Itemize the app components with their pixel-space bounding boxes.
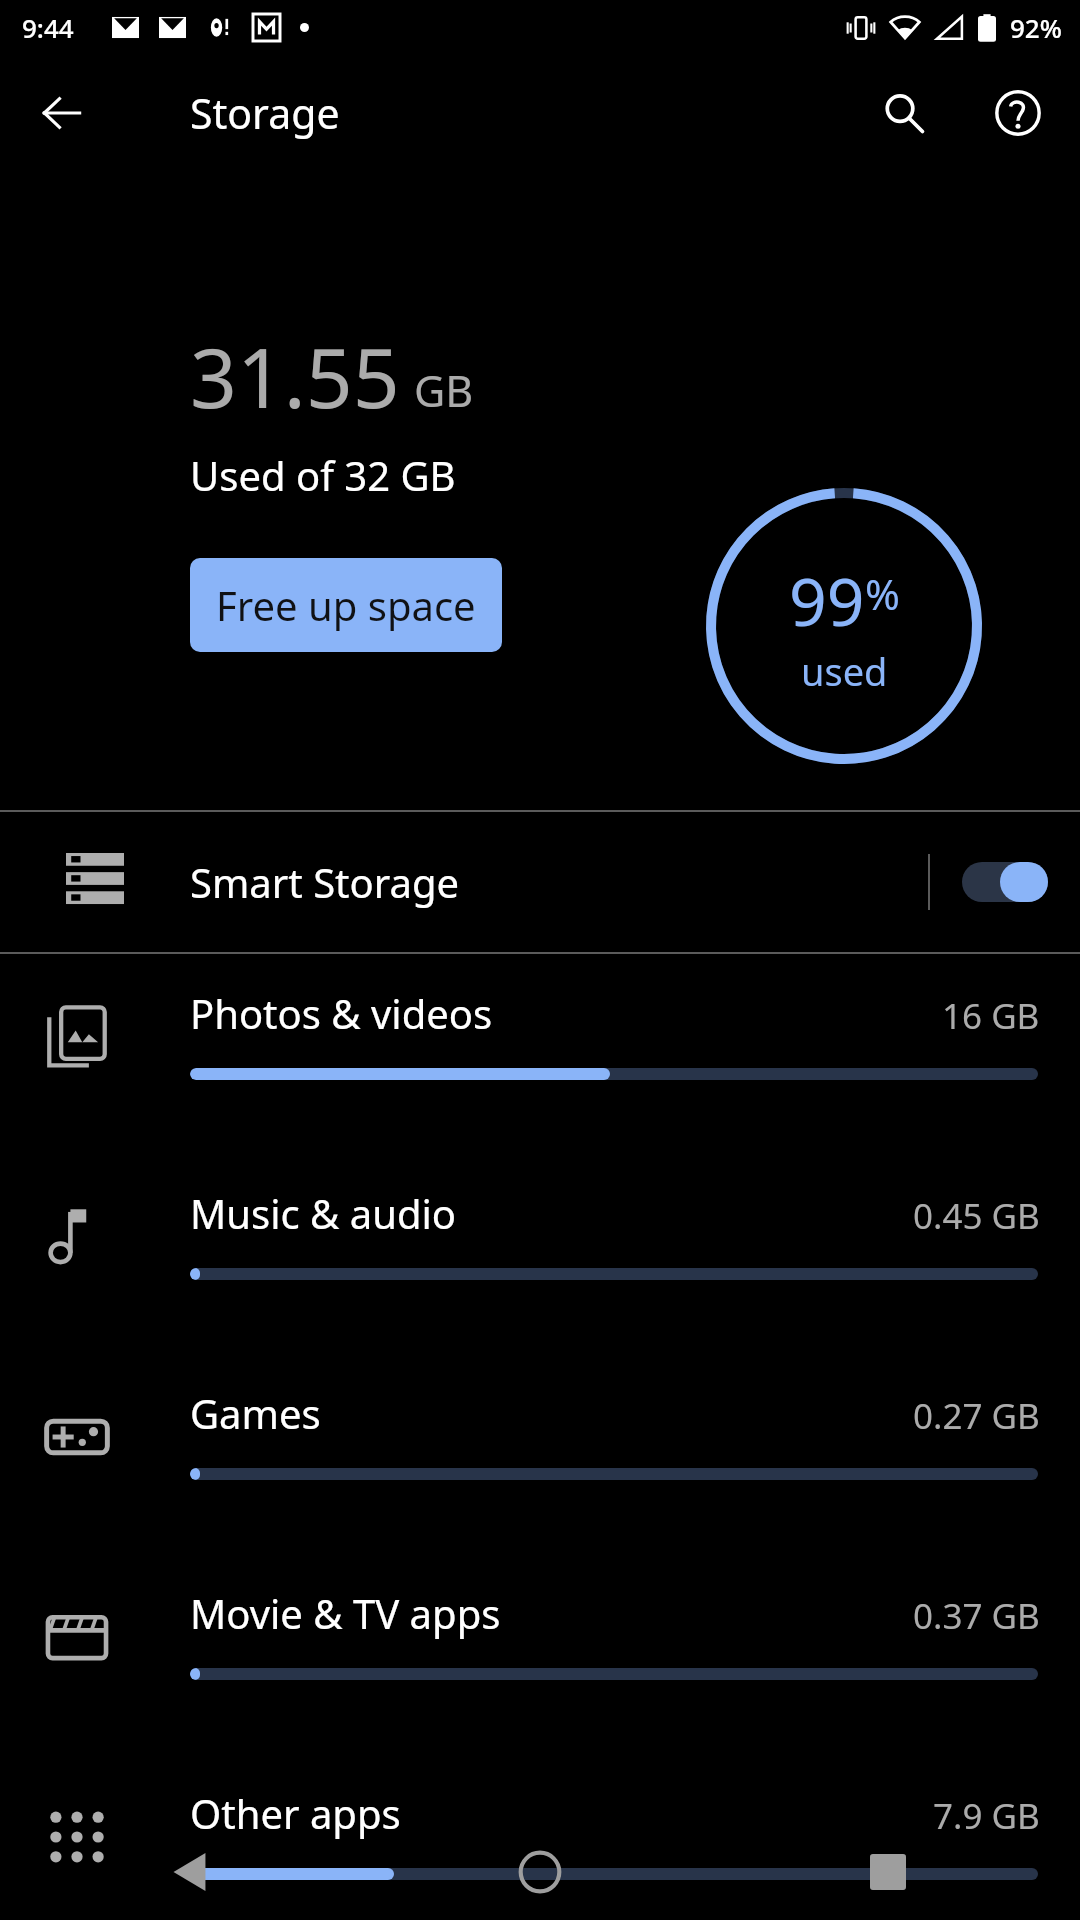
button[interactable]: Other apps — [0, 1754, 1080, 1920]
staticText: 0.37 GB — [913, 1592, 1040, 1640]
staticText: 7.9 GB — [933, 1792, 1040, 1840]
staticText: 0.27 GB — [913, 1392, 1040, 1440]
staticText: 16 GB — [942, 992, 1040, 1040]
staticText: Other apps — [190, 1786, 401, 1840]
button[interactable]: Recent apps — [846, 1830, 930, 1914]
button[interactable]: Search — [868, 77, 940, 149]
staticText: 31.55 — [190, 320, 400, 432]
staticText: Free up space — [216, 578, 476, 632]
button[interactable]: Home — [498, 1830, 582, 1914]
button[interactable]: Smart Storage toggle — [930, 812, 1080, 952]
button[interactable]: Help — [982, 77, 1054, 149]
staticText: used — [801, 645, 888, 697]
button[interactable]: Photos & videos — [0, 954, 1080, 1154]
button[interactable]: Movie & TV apps — [0, 1554, 1080, 1754]
staticText: 9:44 — [22, 10, 74, 45]
button[interactable]: Smart Storage — [0, 812, 1080, 952]
staticText: Movie & TV apps — [190, 1586, 501, 1640]
button[interactable]: Free up space — [190, 558, 502, 652]
staticText: 92% — [1010, 10, 1062, 45]
staticText: Music & audio — [190, 1186, 457, 1240]
button[interactable]: Games — [0, 1354, 1080, 1554]
staticText: Games — [190, 1386, 321, 1440]
staticText: % — [865, 565, 900, 622]
staticText: Photos & videos — [190, 986, 493, 1040]
staticText: Smart Storage — [190, 855, 928, 909]
button[interactable]: Back — [24, 75, 100, 151]
staticText: 99 — [789, 555, 865, 645]
staticText: GB — [414, 361, 474, 420]
staticText: Used of 32 GB — [190, 448, 456, 502]
button[interactable]: Music & audio — [0, 1154, 1080, 1354]
staticText: 0.45 GB — [913, 1192, 1040, 1240]
button[interactable]: Back — [150, 1830, 234, 1914]
staticText: Storage — [190, 85, 340, 141]
